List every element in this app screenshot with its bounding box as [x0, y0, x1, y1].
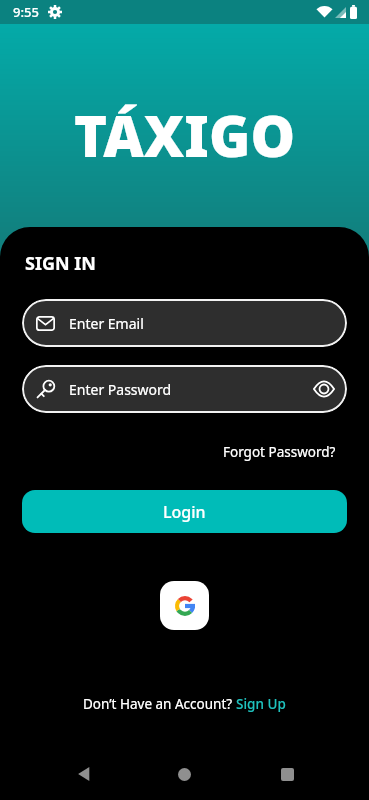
staticText: SIGN IN	[25, 251, 96, 276]
staticText: TÁXIGO	[74, 97, 296, 173]
button[interactable]: Don’t Have an Account?	[83, 695, 286, 713]
button[interactable]	[281, 768, 294, 781]
staticText: Enter Password	[69, 380, 172, 399]
button[interactable]	[160, 581, 209, 630]
button[interactable]	[178, 768, 191, 781]
button[interactable]: Forgot Password?	[223, 443, 336, 461]
button[interactable]: Enter Password	[22, 365, 347, 413]
button[interactable]	[313, 381, 335, 397]
button[interactable]: Login	[22, 490, 347, 533]
staticText: Forgot Password?	[223, 443, 336, 461]
button[interactable]	[76, 767, 90, 781]
staticText: Don’t Have an Account?	[83, 695, 236, 713]
button[interactable]: Enter Email	[22, 299, 347, 347]
staticText: Enter Email	[69, 314, 144, 333]
staticText: Sign Up	[236, 695, 286, 713]
staticText: 9:55	[13, 3, 39, 21]
staticText: Login	[163, 501, 206, 523]
